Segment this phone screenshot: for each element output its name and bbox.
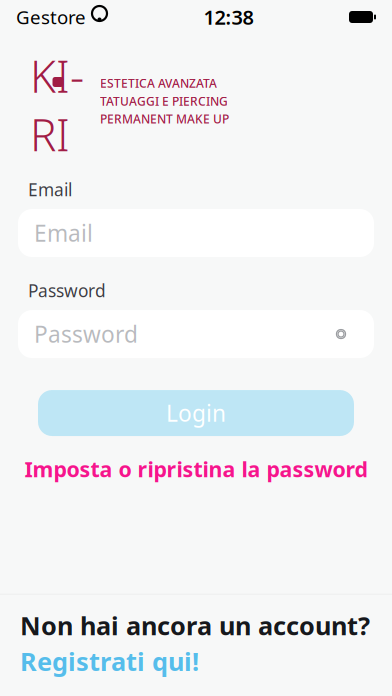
- staticText: Password: [34, 319, 138, 349]
- staticText: Non hai ancora un account?: [20, 609, 370, 642]
- button[interactable]: Imposta o ripristina la password: [18, 454, 374, 484]
- staticText: KIRI: [30, 47, 84, 163]
- staticText: Imposta o ripristina la password: [24, 455, 367, 483]
- staticText: 12:38: [203, 4, 253, 30]
- staticText: Email: [34, 218, 93, 248]
- staticText: TATUAGGI E PIERCING: [100, 93, 228, 109]
- staticText: ESTETICA AVANZATA: [100, 75, 217, 91]
- staticText: Gestore: [16, 5, 86, 29]
- staticText: Login: [166, 398, 226, 428]
- button[interactable]: Login: [18, 390, 374, 436]
- staticText: Email: [28, 178, 72, 201]
- staticText: PERMANENT MAKE UP: [100, 111, 229, 127]
- staticText: Registrati qui!: [20, 644, 199, 678]
- button[interactable]: Registrati qui!: [20, 644, 199, 678]
- button[interactable]: Show password: [324, 317, 358, 351]
- staticText: Password: [28, 279, 106, 302]
